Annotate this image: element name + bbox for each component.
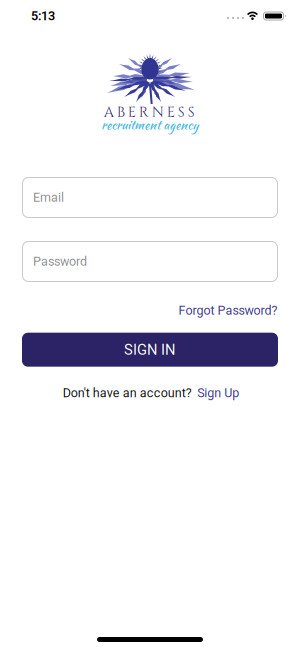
staticText: 5:13 [31,9,55,23]
button[interactable]: Password [0,241,300,282]
button[interactable]: Email [0,177,300,218]
staticText: recruitment agency [101,116,201,134]
staticText: Sign Up [197,386,242,400]
staticText: Email [33,190,67,205]
staticText: Password [33,254,90,269]
button[interactable]: Sign Up [197,386,242,400]
button[interactable]: Forgot Password? [178,303,280,318]
staticText: Don't have an account? [63,386,195,400]
staticText: A B E R N E S S [104,103,199,122]
button[interactable]: SIGN IN [0,333,300,367]
staticText: SIGN IN [124,341,179,358]
staticText: Forgot Password? [178,303,280,318]
